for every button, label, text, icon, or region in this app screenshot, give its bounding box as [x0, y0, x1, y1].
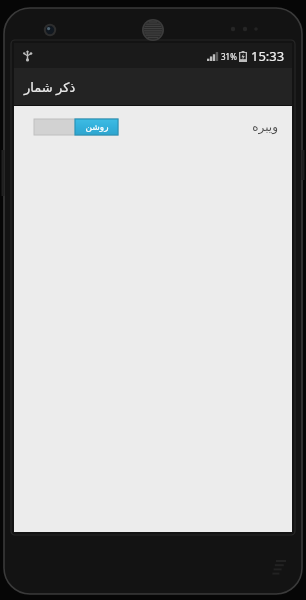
button[interactable]: روشن/خاموش ویبره — [34, 119, 118, 135]
staticText: 31% — [221, 51, 237, 62]
button[interactable]: روشن/خاموش ویبره — [14, 106, 292, 148]
staticText: ویبره — [252, 120, 278, 134]
staticText: روشن — [85, 122, 109, 132]
staticText: ذکر شمار — [24, 78, 76, 96]
staticText: 15:33 — [251, 47, 285, 65]
